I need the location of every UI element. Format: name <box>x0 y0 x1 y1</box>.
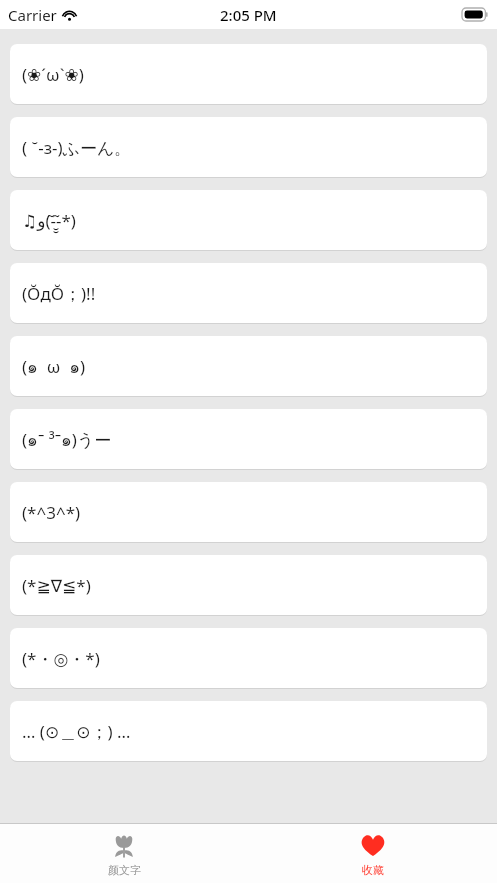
button[interactable]: (❀´ω`❀) <box>10 44 487 104</box>
staticText: (*≧∇≦*) <box>22 574 91 597</box>
staticText: ( ˘-ɜ-)ふーん。 <box>22 136 132 159</box>
staticText: (*・◎・*) <box>22 647 100 670</box>
button[interactable]: (๑ ω ๑) <box>10 336 487 396</box>
button[interactable]: (*≧∇≦*) <box>10 555 487 615</box>
button[interactable]: Kaomoji <box>0 824 248 883</box>
button[interactable]: ♫و(-̮̮̃-̃*) <box>10 190 487 250</box>
staticText: … (⊙＿⊙；) … <box>22 720 131 743</box>
staticText: (๑ ω ๑) <box>22 353 86 380</box>
staticText: 颜文字 <box>108 863 141 877</box>
staticText: (❀´ω`❀) <box>22 63 84 86</box>
button[interactable]: Favorites <box>248 824 497 883</box>
staticText: ♫و(-̮̮̃-̃*) <box>22 209 76 232</box>
staticText: Carrier <box>8 5 57 25</box>
staticText: (*^3^*) <box>22 501 81 524</box>
button[interactable]: (*^3^*) <box>10 482 487 542</box>
staticText: 收藏 <box>362 863 384 877</box>
staticText: (ŎдŎ；)!! <box>22 282 96 305</box>
staticText: (๑ˉ ³ˉ๑)うー <box>22 426 112 453</box>
button[interactable]: ( ˘-ɜ-)ふーん。 <box>10 117 487 177</box>
button[interactable]: (๑ˉ ³ˉ๑)うー <box>10 409 487 469</box>
button[interactable]: … (⊙＿⊙；) … <box>10 701 487 761</box>
button[interactable]: (*・◎・*) <box>10 628 487 688</box>
button[interactable]: (ŎдŎ；)!! <box>10 263 487 323</box>
staticText: 2:05 PM <box>220 5 277 25</box>
